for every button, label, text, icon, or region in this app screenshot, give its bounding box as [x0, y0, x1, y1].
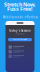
staticText: Fuss Free!	[7, 5, 33, 12]
staticText: Start Stretching	[13, 39, 27, 40]
staticText: Stretch Now,	[4, 1, 36, 8]
staticText: Mobility made effortless	[2, 15, 37, 19]
button[interactable]: Start Stretching	[8, 38, 32, 41]
staticText: Today's Session	[9, 29, 31, 32]
staticText: 12 min · Full body	[15, 33, 25, 35]
